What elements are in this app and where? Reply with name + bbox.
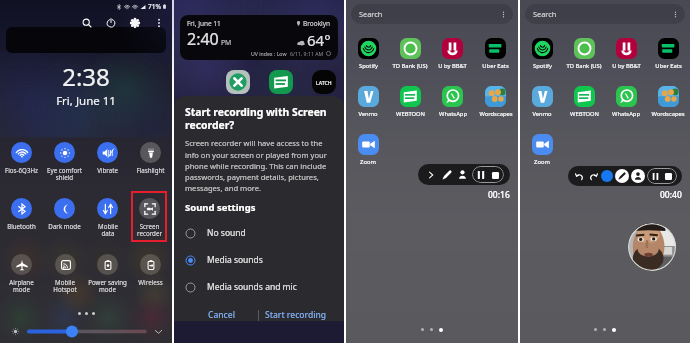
staticText: WhatsApp <box>612 110 640 118</box>
button[interactable]: WhatsApp <box>431 86 474 118</box>
staticText: WhatsApp <box>439 110 467 118</box>
button[interactable]: Zoom <box>521 134 563 166</box>
button[interactable]: Zoom <box>347 134 389 166</box>
button[interactable]: Pause <box>475 169 487 181</box>
staticText: Mobile data <box>98 222 118 238</box>
button[interactable]: Media sounds <box>185 254 333 266</box>
button[interactable]: U by BB&T <box>605 38 647 70</box>
button[interactable]: Uber Eats <box>474 38 517 70</box>
staticText: Screen recorder will have access to the … <box>185 138 333 193</box>
button[interactable]: Search <box>525 4 685 24</box>
staticText: Zoom <box>534 158 550 166</box>
staticText: Mobile Hotspot <box>53 278 77 294</box>
staticText: No sound <box>207 227 246 239</box>
button[interactable]: Screen recorder <box>131 191 167 242</box>
staticText: U by BB&T <box>612 62 641 70</box>
button[interactable]: Fios-6Q3Hz <box>1 141 42 192</box>
button[interactable]: Venmo <box>347 86 389 118</box>
button[interactable]: Power saving mode <box>87 253 128 304</box>
staticText: 2:40 <box>187 28 219 50</box>
button[interactable]: Start recording <box>265 309 327 321</box>
button[interactable]: Spotify <box>521 38 563 70</box>
button[interactable]: Mobile Hotspot <box>44 253 85 304</box>
staticText: Fri, June 11 <box>56 93 116 109</box>
button[interactable]: Settings <box>127 15 142 30</box>
staticText: Start recording <box>265 309 327 321</box>
staticText: Vibrate <box>97 166 118 174</box>
button[interactable]: WEBTOON <box>563 86 605 118</box>
button[interactable]: Redo <box>587 170 599 182</box>
button[interactable]: Stop <box>663 171 674 182</box>
button[interactable]: Dark mode <box>44 197 85 248</box>
staticText: Zoom <box>360 158 376 166</box>
button[interactable]: TD Bank (US) <box>563 38 605 70</box>
staticText: 00:16 <box>488 189 510 201</box>
staticText: Screen recorder <box>137 222 162 238</box>
button[interactable]: Vibrate <box>87 141 128 192</box>
button[interactable]: Flashlight <box>130 141 171 192</box>
button[interactable]: Pause <box>650 171 661 182</box>
button[interactable]: Power <box>103 15 118 30</box>
staticText: Brooklyn <box>303 19 331 28</box>
staticText: Fios-6Q3Hz <box>5 166 38 174</box>
button[interactable]: Venmo <box>521 86 563 118</box>
staticText: 71% <box>148 2 161 11</box>
staticText: TD Bank (US) <box>392 62 428 70</box>
button[interactable]: No sound <box>185 227 333 239</box>
staticText: Wordscapes <box>651 110 685 118</box>
staticText: UV index : Low <box>251 50 287 57</box>
button[interactable]: Airplane mode <box>1 253 42 304</box>
staticText: Airplane mode <box>9 278 34 294</box>
button[interactable]: Stop <box>489 169 501 181</box>
staticText: 64° <box>307 30 331 50</box>
button[interactable]: Selfie video <box>456 168 469 181</box>
button[interactable]: TD Bank (US) <box>389 38 431 70</box>
staticText: U by BB&T <box>438 62 467 70</box>
button[interactable]: Eye comfort shield <box>44 141 85 192</box>
staticText: PM <box>221 38 232 47</box>
staticText: 00:40 <box>660 189 682 201</box>
staticText: Venmo <box>532 110 552 118</box>
button[interactable]: Wordscapes <box>647 86 689 118</box>
button[interactable]: Search <box>351 4 513 24</box>
button[interactable]: Mobile data <box>87 197 128 248</box>
staticText: Venmo <box>358 110 378 118</box>
button[interactable]: Selfie camera preview <box>628 223 676 271</box>
button[interactable]: Expand <box>424 168 437 181</box>
staticText: Wordscapes <box>479 110 513 118</box>
staticText: Search <box>533 9 557 19</box>
button[interactable]: Cancel <box>185 309 258 321</box>
button[interactable]: Wordscapes <box>474 86 517 118</box>
button[interactable]: Uber Eats <box>647 38 689 70</box>
button[interactable]: Bluetooth <box>1 197 42 248</box>
staticText: Eye comfort shield <box>47 166 82 182</box>
staticText: Media sounds <box>207 254 263 266</box>
button[interactable]: Color <box>601 170 613 182</box>
staticText: Bluetooth <box>7 222 36 230</box>
button[interactable]: Selfie <box>631 169 645 183</box>
button[interactable]: Media sounds and mic <box>185 281 333 293</box>
button[interactable]: WhatsApp <box>605 86 647 118</box>
staticText: Start recording with Screen recorder? <box>185 105 333 132</box>
button[interactable]: U by BB&T <box>431 38 474 70</box>
staticText: Search <box>359 9 383 19</box>
staticText: Spotify <box>359 62 378 70</box>
staticText: 6/11, 9:11 AM <box>290 50 324 57</box>
staticText: Spotify <box>533 62 552 70</box>
staticText: WEBTOON <box>396 110 425 118</box>
button[interactable]: More options <box>151 15 166 30</box>
staticText: Cancel <box>208 309 235 321</box>
staticText: 2:38 <box>62 60 110 93</box>
button[interactable]: Spotify <box>347 38 389 70</box>
button[interactable]: Fri, June 11 <box>180 15 338 60</box>
button[interactable]: Search <box>79 15 94 30</box>
button[interactable]: Wireless <box>130 253 171 304</box>
button[interactable]: Draw <box>440 168 453 181</box>
staticText: Flashlight <box>136 166 165 174</box>
button[interactable]: Pen <box>615 169 629 183</box>
staticText: Power saving mode <box>88 278 127 294</box>
staticText: TD Bank (US) <box>566 62 602 70</box>
staticText: LATCH <box>316 79 332 86</box>
button[interactable]: WEBTOON <box>389 86 431 118</box>
button[interactable]: Undo <box>573 170 585 182</box>
